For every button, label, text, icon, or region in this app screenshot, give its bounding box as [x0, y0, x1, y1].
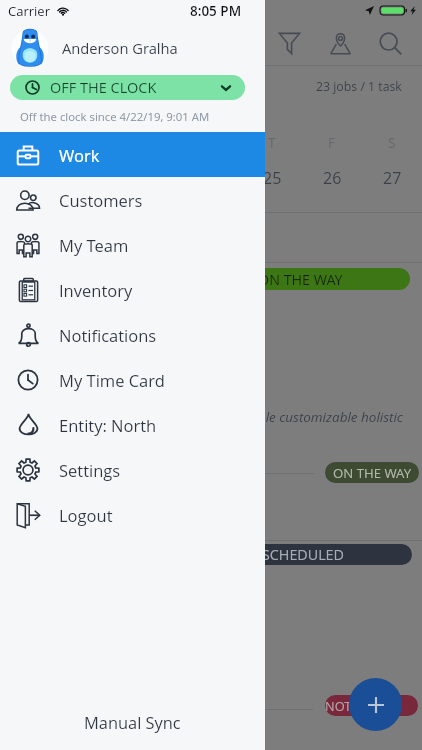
staticText: 26 [323, 167, 342, 189]
staticText: Manual Sync [84, 711, 181, 733]
staticText: M [85, 133, 98, 152]
button[interactable]: Filter [268, 22, 311, 65]
staticText: 21 [21, 167, 40, 189]
staticText: ON THE WAY [258, 270, 343, 289]
staticText: Carrier [8, 2, 50, 20]
staticText: 22 [82, 167, 101, 189]
button[interactable]: Entity: North [0, 402, 265, 447]
staticText: Anderson Gralha [62, 38, 178, 58]
button[interactable]: 27 [362, 161, 422, 195]
staticText: My Team [59, 234, 129, 256]
button[interactable]: Customers [0, 177, 265, 222]
staticText: My Time Card [59, 369, 165, 391]
button[interactable]: Search [369, 22, 412, 65]
button[interactable]: Work [0, 132, 265, 177]
button[interactable]: Anderson Gralha [0, 22, 265, 73]
button[interactable]: 21 [0, 161, 61, 195]
staticText: Fully-configurable customizable holistic [170, 408, 403, 426]
staticText: Customers [59, 189, 143, 211]
button[interactable]: Logout [0, 492, 265, 537]
button[interactable]: 22 [61, 161, 122, 195]
staticText: 23 [143, 167, 162, 189]
staticText: SCHEDULED [262, 545, 344, 564]
button[interactable]: Add [349, 678, 402, 731]
staticText: Logout [59, 504, 113, 526]
staticText: S [388, 133, 396, 152]
staticText: 8:05 PM [190, 2, 242, 20]
button[interactable]: Notifications [0, 312, 265, 357]
button[interactable]: OFF THE CLOCK [10, 75, 245, 100]
button[interactable]: 26 [302, 161, 362, 195]
staticText: 23 jobs / 1 task [316, 78, 402, 95]
staticText: ON THE WAY [333, 464, 412, 482]
button[interactable]: 23 [122, 161, 182, 195]
button[interactable]: My Team [0, 222, 265, 267]
staticText: 24 [203, 167, 222, 189]
button[interactable]: SCHEDULED [250, 544, 412, 565]
staticText: Notifications [59, 324, 157, 346]
button[interactable]: Map [319, 22, 362, 65]
staticText: Entity: North [59, 414, 157, 436]
staticText: Work [59, 144, 100, 166]
button[interactable]: ON THE WAY [325, 462, 419, 483]
staticText: F [328, 133, 336, 152]
staticText: Inventory [59, 279, 133, 301]
staticText: S [27, 133, 35, 152]
staticText: T [268, 133, 276, 152]
staticText: Settings [59, 459, 121, 481]
button[interactable]: 25 [242, 161, 302, 195]
staticText: OFF THE CLOCK [50, 78, 157, 98]
staticText: NOT SCHEDULED [325, 697, 418, 714]
staticText: Off the clock since 4/22/19, 9:01 AM [20, 109, 210, 125]
button[interactable]: 24 [182, 161, 242, 195]
button[interactable]: My Time Card [0, 357, 265, 402]
button[interactable]: ON THE WAY [246, 268, 410, 290]
button[interactable]: NOT SCHEDULED [325, 695, 418, 716]
button[interactable]: Inventory [0, 267, 265, 312]
button[interactable]: Manual Sync [0, 694, 265, 750]
staticText: 25 [263, 167, 282, 189]
button[interactable]: Settings [0, 447, 265, 492]
staticText: 27 [383, 167, 402, 189]
